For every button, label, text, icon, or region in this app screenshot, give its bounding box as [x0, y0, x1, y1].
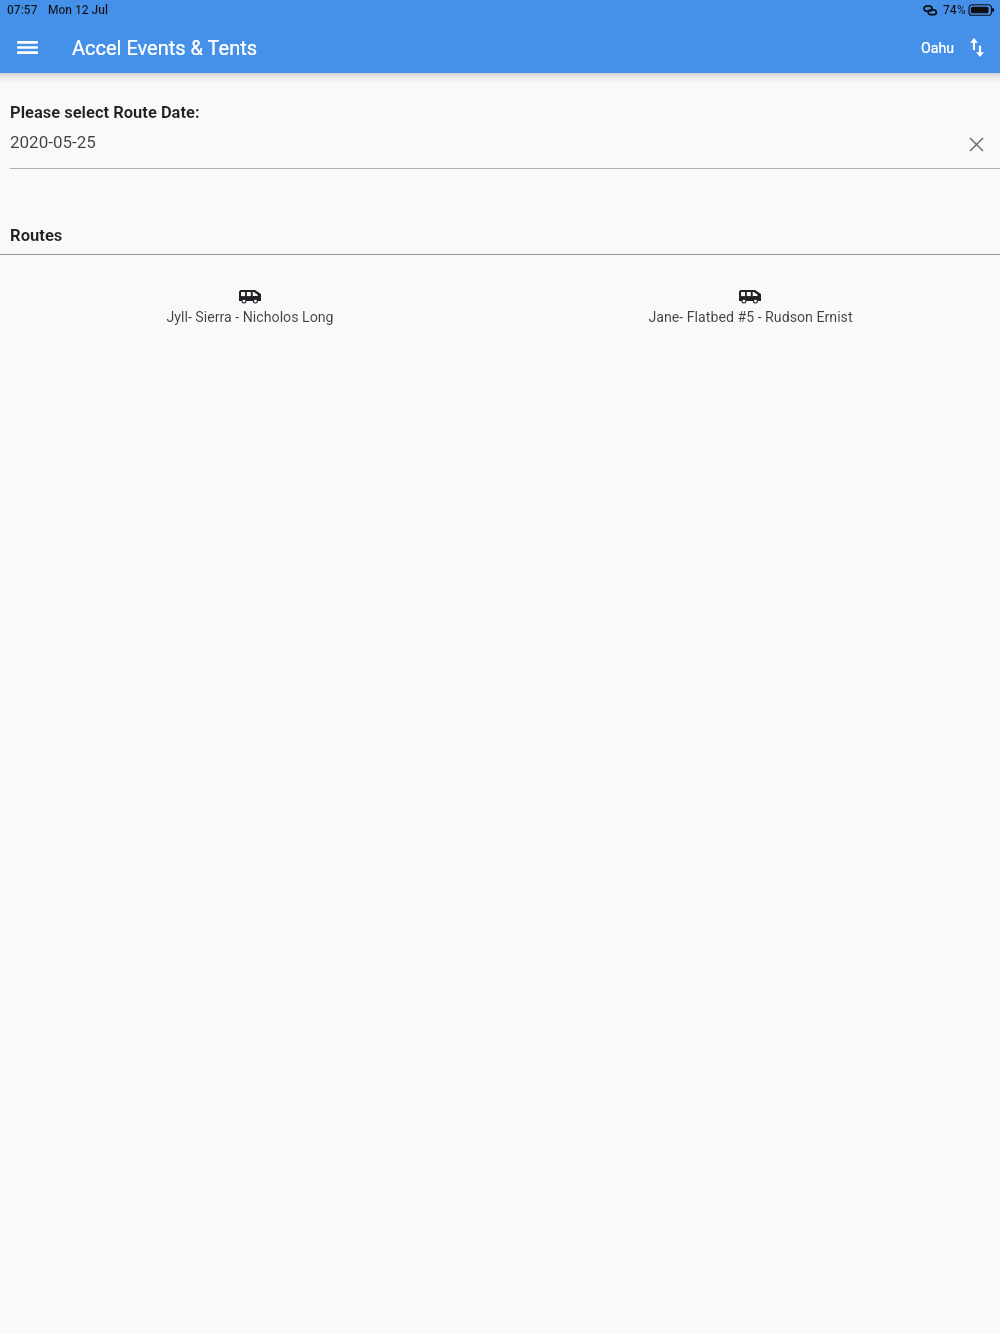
button[interactable]: Sort routes	[959, 31, 995, 67]
staticText: Accel Events & Tents	[72, 36, 258, 59]
staticText: 74%	[943, 3, 966, 17]
button[interactable]: Open navigation menu	[5, 26, 50, 71]
staticText: Jyll- Sierra - Nicholos Long	[166, 309, 334, 326]
staticText: Please select Route Date:	[10, 103, 200, 122]
button[interactable]: Clear date	[957, 132, 989, 164]
button[interactable]: Oahu	[907, 30, 959, 67]
button[interactable]: Jane- Flatbed #5 - Rudson Ernist	[500, 287, 1000, 329]
staticText: 07:57	[7, 3, 38, 17]
button[interactable]: Jyll- Sierra - Nicholos Long	[0, 287, 500, 329]
staticText: Mon 12 Jul	[48, 3, 108, 17]
staticText: Routes	[10, 226, 63, 245]
staticText: Oahu	[921, 40, 955, 57]
staticText: Jane- Flatbed #5 - Rudson Ernist	[648, 309, 853, 326]
staticText: 2020-05-25	[10, 132, 96, 152]
